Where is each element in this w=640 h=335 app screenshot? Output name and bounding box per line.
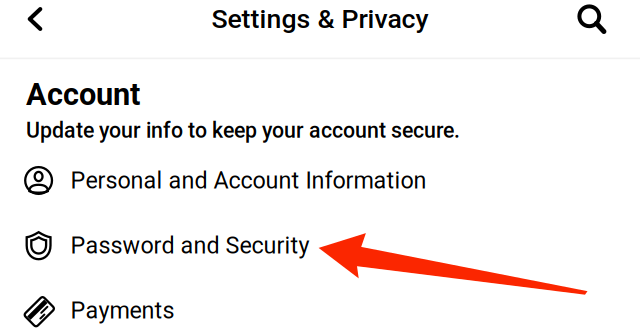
staticText: Account [26,76,140,112]
button[interactable]: Back [9,0,61,43]
button[interactable]: Search [566,0,618,43]
staticText: Payments [71,297,175,324]
button[interactable]: Payments [0,278,640,335]
staticText: Update your info to keep your account se… [26,118,460,143]
button[interactable]: Personal and Account Information [0,148,640,213]
button[interactable]: Password and Security [0,213,640,278]
staticText: Password and Security [71,232,310,259]
staticText: Settings & Privacy [211,3,428,35]
staticText: Personal and Account Information [71,167,427,194]
